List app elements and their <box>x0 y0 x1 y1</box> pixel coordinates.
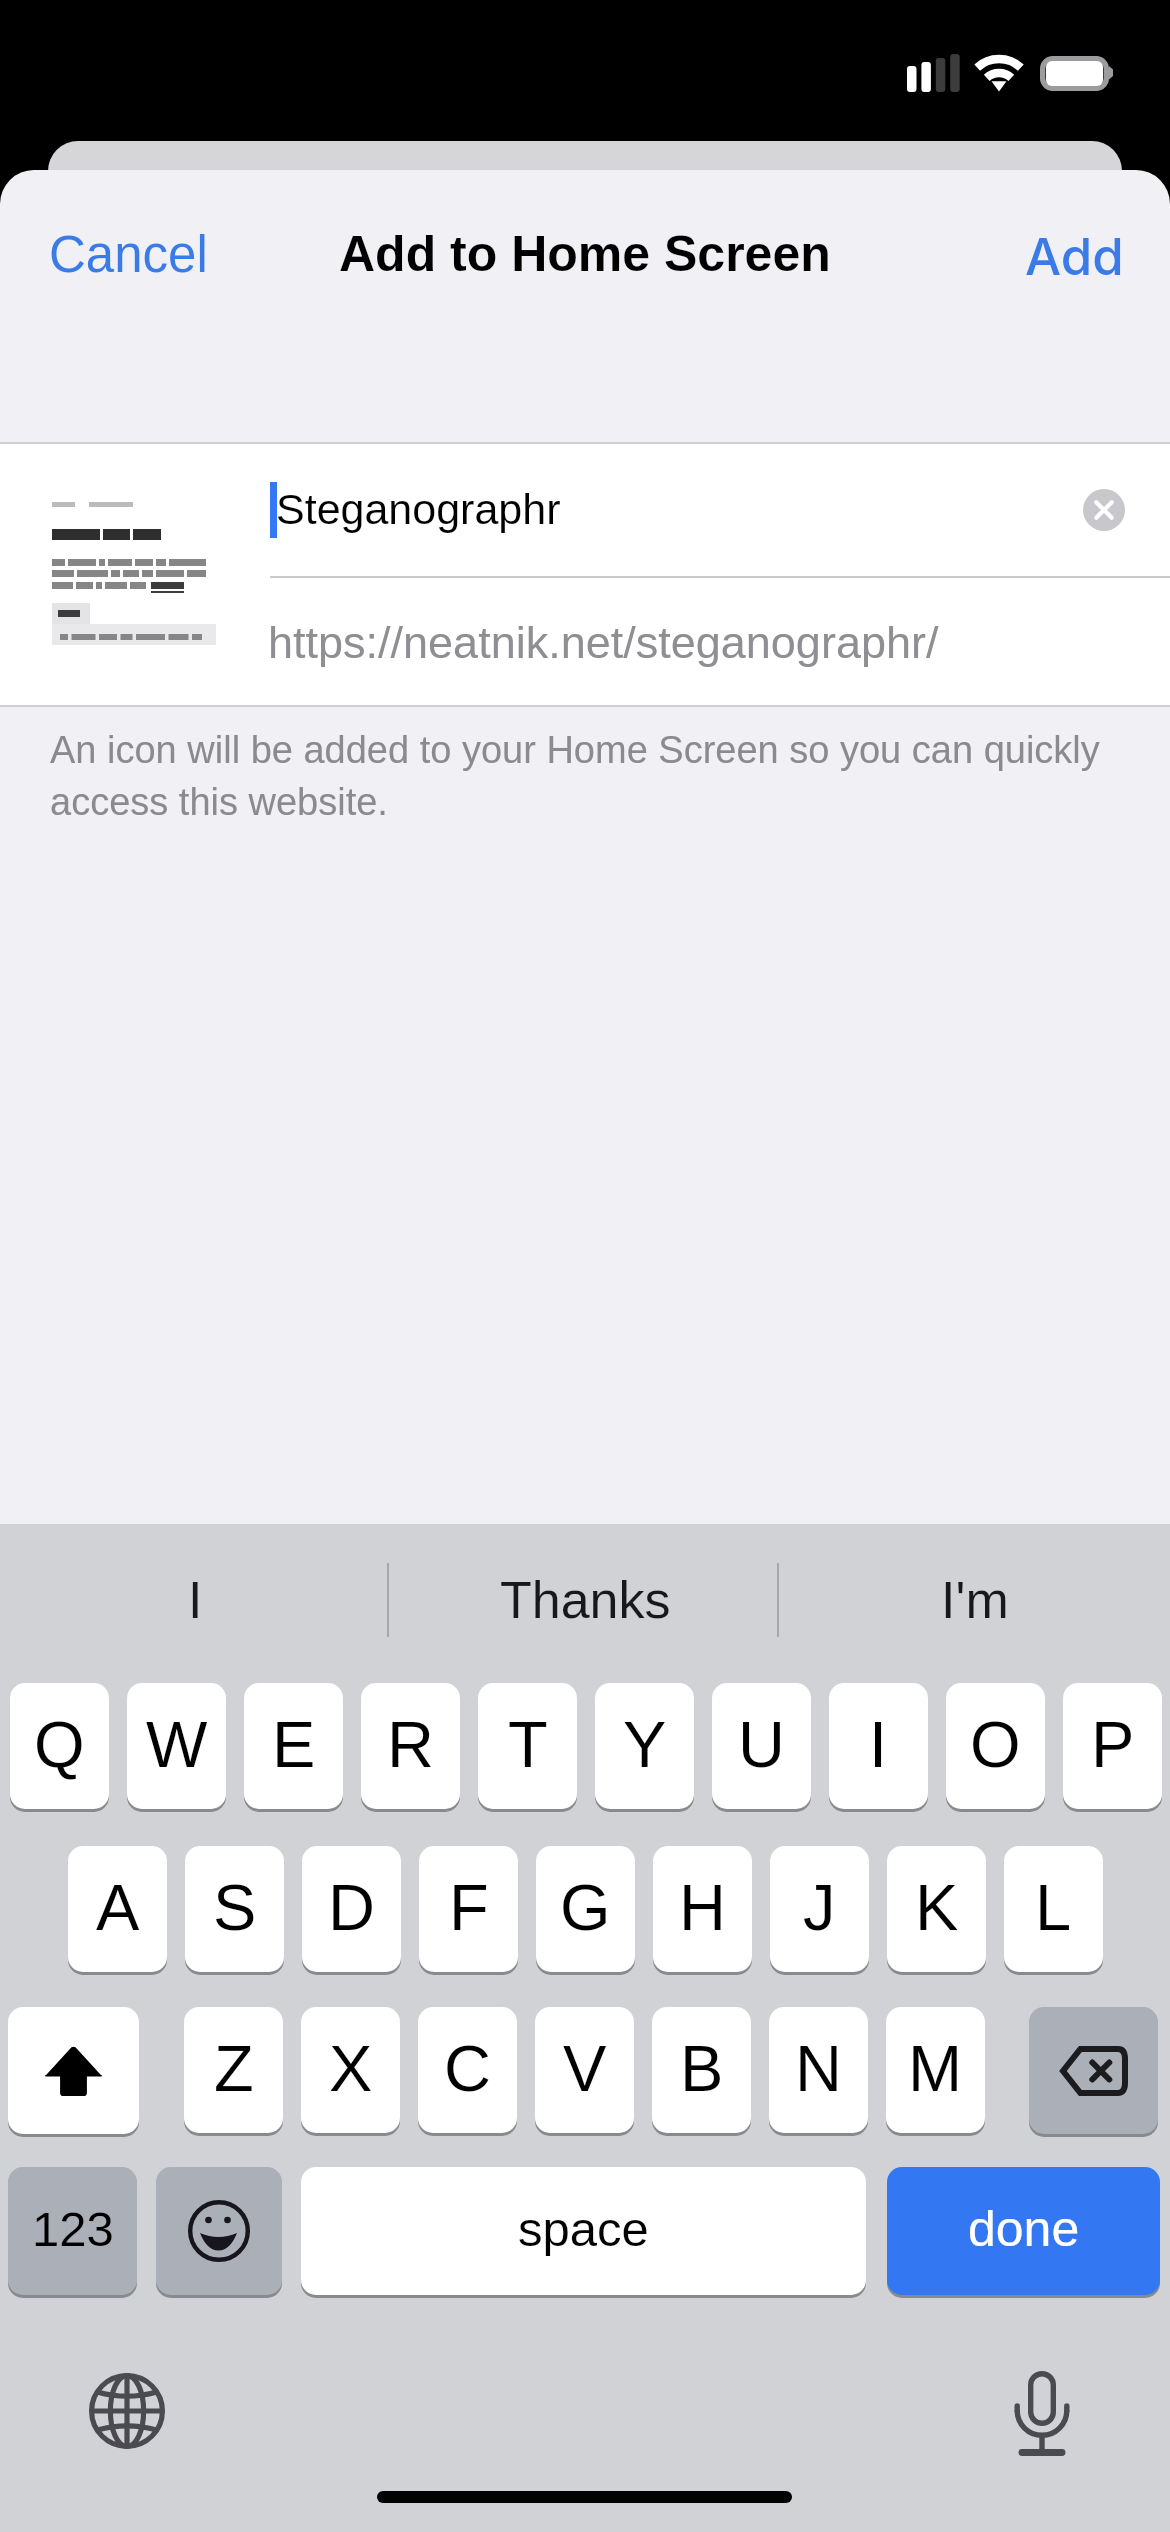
button[interactable]: Q <box>10 1683 109 1809</box>
staticText: I <box>869 1708 888 1781</box>
button[interactable]: done <box>887 2167 1160 2295</box>
staticText: done <box>968 2201 1080 2257</box>
button[interactable]: 123 <box>8 2167 137 2295</box>
staticText: T <box>508 1708 548 1781</box>
button[interactable]: T <box>478 1683 577 1809</box>
staticText: S <box>213 1871 257 1944</box>
button[interactable]: R <box>361 1683 460 1809</box>
button[interactable]: A <box>68 1846 167 1972</box>
button[interactable]: Cancel <box>31 214 226 295</box>
staticText: Q <box>34 1708 85 1781</box>
button[interactable]: Thanks <box>390 1524 780 1676</box>
staticText: D <box>328 1871 375 1944</box>
button[interactable]: https://neatnik.net/steganographr/ <box>268 617 939 667</box>
button[interactable]: Emoji keyboard <box>156 2167 282 2295</box>
button[interactable]: Z <box>184 2007 283 2133</box>
button[interactable]: H <box>653 1846 752 1972</box>
staticText: X <box>329 2032 373 2105</box>
staticText: Cancel <box>49 226 208 283</box>
button[interactable]: P <box>1063 1683 1162 1809</box>
button[interactable]: Clear text <box>1083 489 1125 531</box>
button[interactable]: U <box>712 1683 811 1809</box>
staticText: C <box>444 2032 491 2105</box>
button[interactable]: I'm <box>780 1524 1170 1676</box>
button[interactable]: X <box>301 2007 400 2133</box>
button[interactable]: G <box>536 1846 635 1972</box>
button[interactable]: K <box>887 1846 986 1972</box>
staticText: V <box>563 2032 607 2105</box>
button[interactable]: D <box>302 1846 401 1972</box>
button[interactable]: Dictate <box>1003 2367 1079 2455</box>
staticText: U <box>738 1708 785 1781</box>
staticText: Steganographr <box>276 485 561 533</box>
staticText: Thanks <box>500 1571 671 1629</box>
staticText: E <box>272 1708 316 1781</box>
staticText: I'm <box>941 1571 1009 1629</box>
button[interactable]: I <box>0 1524 390 1676</box>
button[interactable]: L <box>1004 1846 1103 1972</box>
staticText: A <box>96 1871 140 1944</box>
staticText: R <box>387 1708 434 1781</box>
button[interactable]: Add <box>1007 214 1142 300</box>
button[interactable]: W <box>127 1683 226 1809</box>
button[interactable]: Steganographr <box>276 485 561 533</box>
staticText: N <box>795 2032 842 2105</box>
staticText: https://neatnik.net/steganographr/ <box>268 617 939 667</box>
button[interactable]: Backspace <box>1029 2007 1158 2134</box>
button[interactable]: N <box>769 2007 868 2133</box>
staticText: Z <box>214 2032 254 2105</box>
staticText: Add <box>1025 226 1124 288</box>
staticText: J <box>803 1871 836 1944</box>
button[interactable]: space <box>301 2167 866 2295</box>
button[interactable]: S <box>185 1846 284 1972</box>
button[interactable]: M <box>886 2007 985 2133</box>
staticText: M <box>908 2032 963 2105</box>
staticText: K <box>915 1871 959 1944</box>
button[interactable]: V <box>535 2007 634 2133</box>
staticText: F <box>449 1871 489 1944</box>
staticText: space <box>518 2202 649 2257</box>
staticText: P <box>1091 1708 1135 1781</box>
button[interactable]: B <box>652 2007 751 2133</box>
staticText: Y <box>623 1708 667 1781</box>
staticText: G <box>560 1871 611 1944</box>
button[interactable]: O <box>946 1683 1045 1809</box>
button[interactable]: Shift <box>8 2007 139 2134</box>
staticText: L <box>1035 1871 1072 1944</box>
staticText: B <box>680 2032 724 2105</box>
staticText: An icon will be added to your Home Scree… <box>50 729 1120 823</box>
button[interactable]: C <box>418 2007 517 2133</box>
staticText: Add to Home Screen <box>339 226 831 282</box>
button[interactable]: J <box>770 1846 869 1972</box>
button[interactable]: F <box>419 1846 518 1972</box>
staticText: I <box>188 1571 203 1629</box>
staticText: 123 <box>32 2202 114 2257</box>
button[interactable]: Y <box>595 1683 694 1809</box>
button[interactable]: Change keyboard <box>89 2373 165 2449</box>
button[interactable]: I <box>829 1683 928 1809</box>
staticText: W <box>146 1708 208 1781</box>
button[interactable]: E <box>244 1683 343 1809</box>
staticText: H <box>679 1871 726 1944</box>
staticText: O <box>970 1708 1021 1781</box>
